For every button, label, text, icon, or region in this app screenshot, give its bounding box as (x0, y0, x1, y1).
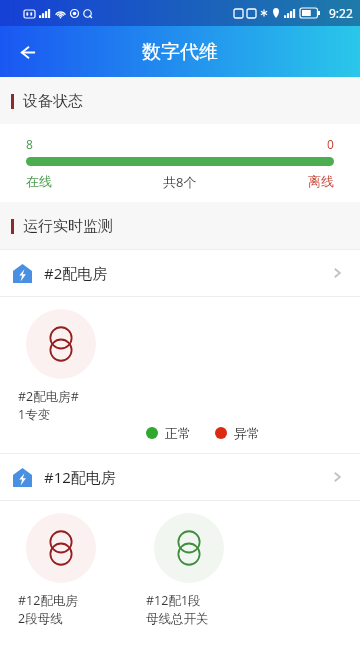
staticText: #2配电房 (44, 263, 108, 283)
staticText: 设备状态 (23, 92, 83, 111)
button[interactable]: Back (6, 31, 48, 73)
button[interactable]: #12配1段 母线总开关 (146, 513, 256, 626)
button[interactable]: #12配电房 (0, 454, 360, 500)
staticText: 异常 (234, 425, 260, 441)
staticText: 正常 (165, 425, 191, 441)
staticText: #12配电房 2段母线 (18, 592, 78, 627)
staticText: #12配1段 母线总开关 (146, 592, 209, 626)
staticText: 0 (327, 136, 334, 152)
staticText: #12配电房 (44, 467, 116, 487)
button[interactable]: #2配电房# 1专变 (18, 309, 128, 423)
staticText: 共8个 (163, 173, 197, 191)
staticText: 离线 (308, 173, 334, 189)
staticText: 8 (26, 136, 33, 152)
staticText: 数字代维 (142, 40, 218, 64)
staticText: 在线 (26, 173, 52, 189)
button[interactable]: #2配电房 (0, 250, 360, 296)
staticText: 9:22 (329, 5, 353, 21)
staticText: #2配电房# 1专变 (18, 388, 79, 423)
button[interactable]: #12配电房 2段母线 (18, 513, 128, 627)
staticText: 运行实时监测 (23, 217, 113, 236)
